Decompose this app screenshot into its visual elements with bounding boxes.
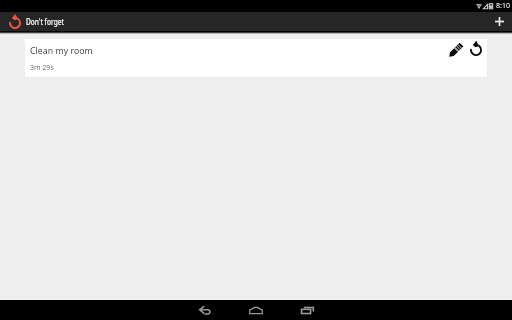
staticText: Don't forget (26, 16, 64, 27)
button[interactable]: Home (236, 300, 276, 320)
staticText: 8:10 (496, 1, 510, 11)
button[interactable]: Clean my room (25, 39, 487, 77)
staticText: Clean my room (30, 45, 93, 57)
staticText: 3m 29s (30, 63, 54, 73)
button[interactable]: Back (185, 300, 225, 320)
button[interactable]: Edit (447, 42, 463, 58)
button[interactable]: Recents (287, 300, 327, 320)
button[interactable]: Reset (468, 42, 484, 58)
button[interactable]: Add (486, 12, 512, 31)
